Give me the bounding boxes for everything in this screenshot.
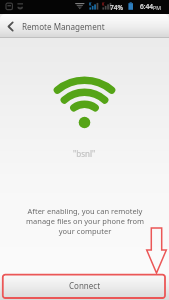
staticText: "bsnl" (73, 148, 96, 159)
staticText: PM (153, 4, 161, 11)
staticText: 74% (110, 3, 124, 12)
staticText: Connect (69, 280, 101, 291)
button[interactable]: Back (0, 14, 21, 38)
button[interactable]: Connect (0, 275, 169, 300)
staticText: 6:44 (140, 2, 154, 11)
staticText: Remote Management (22, 21, 105, 32)
staticText: After enabling, you can remotely manage … (26, 206, 144, 236)
